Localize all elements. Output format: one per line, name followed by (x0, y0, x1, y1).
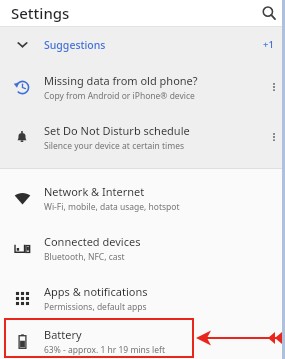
button[interactable]: Missing data from old phone? (0, 62, 285, 112)
staticText: Network & Internet (44, 184, 145, 199)
staticText: Connected devices (44, 234, 141, 249)
staticText: +1 (263, 38, 274, 51)
button[interactable]: Battery (0, 323, 285, 359)
button[interactable]: Suggestions (0, 27, 285, 62)
button[interactable]: Apps & notifications (0, 273, 285, 323)
button[interactable]: Network & Internet (0, 173, 285, 223)
staticText: Battery (44, 327, 82, 342)
button[interactable]: More options (263, 62, 285, 112)
staticText: Wi-Fi, mobile, data usage, hotspot (44, 201, 180, 213)
staticText: Apps & notifications (44, 284, 148, 299)
button[interactable]: Connected devices (0, 223, 285, 273)
staticText: Suggestions (44, 38, 106, 52)
staticText: Copy from Android or iPhone® device (44, 90, 195, 102)
button[interactable]: Search (258, 2, 280, 24)
staticText: Permissions, default apps (44, 301, 147, 313)
staticText: Silence your device at certain times (44, 140, 185, 152)
button[interactable]: Set Do Not Disturb schedule (0, 112, 285, 162)
button[interactable]: More options (263, 112, 285, 162)
staticText: Set Do Not Disturb schedule (44, 123, 190, 138)
staticText: Bluetooth, NFC, cast (44, 251, 125, 263)
staticText: 63% - approx. 1 hr 19 mins left (44, 344, 166, 356)
staticText: Missing data from old phone? (44, 73, 198, 88)
staticText: Settings (11, 3, 70, 23)
